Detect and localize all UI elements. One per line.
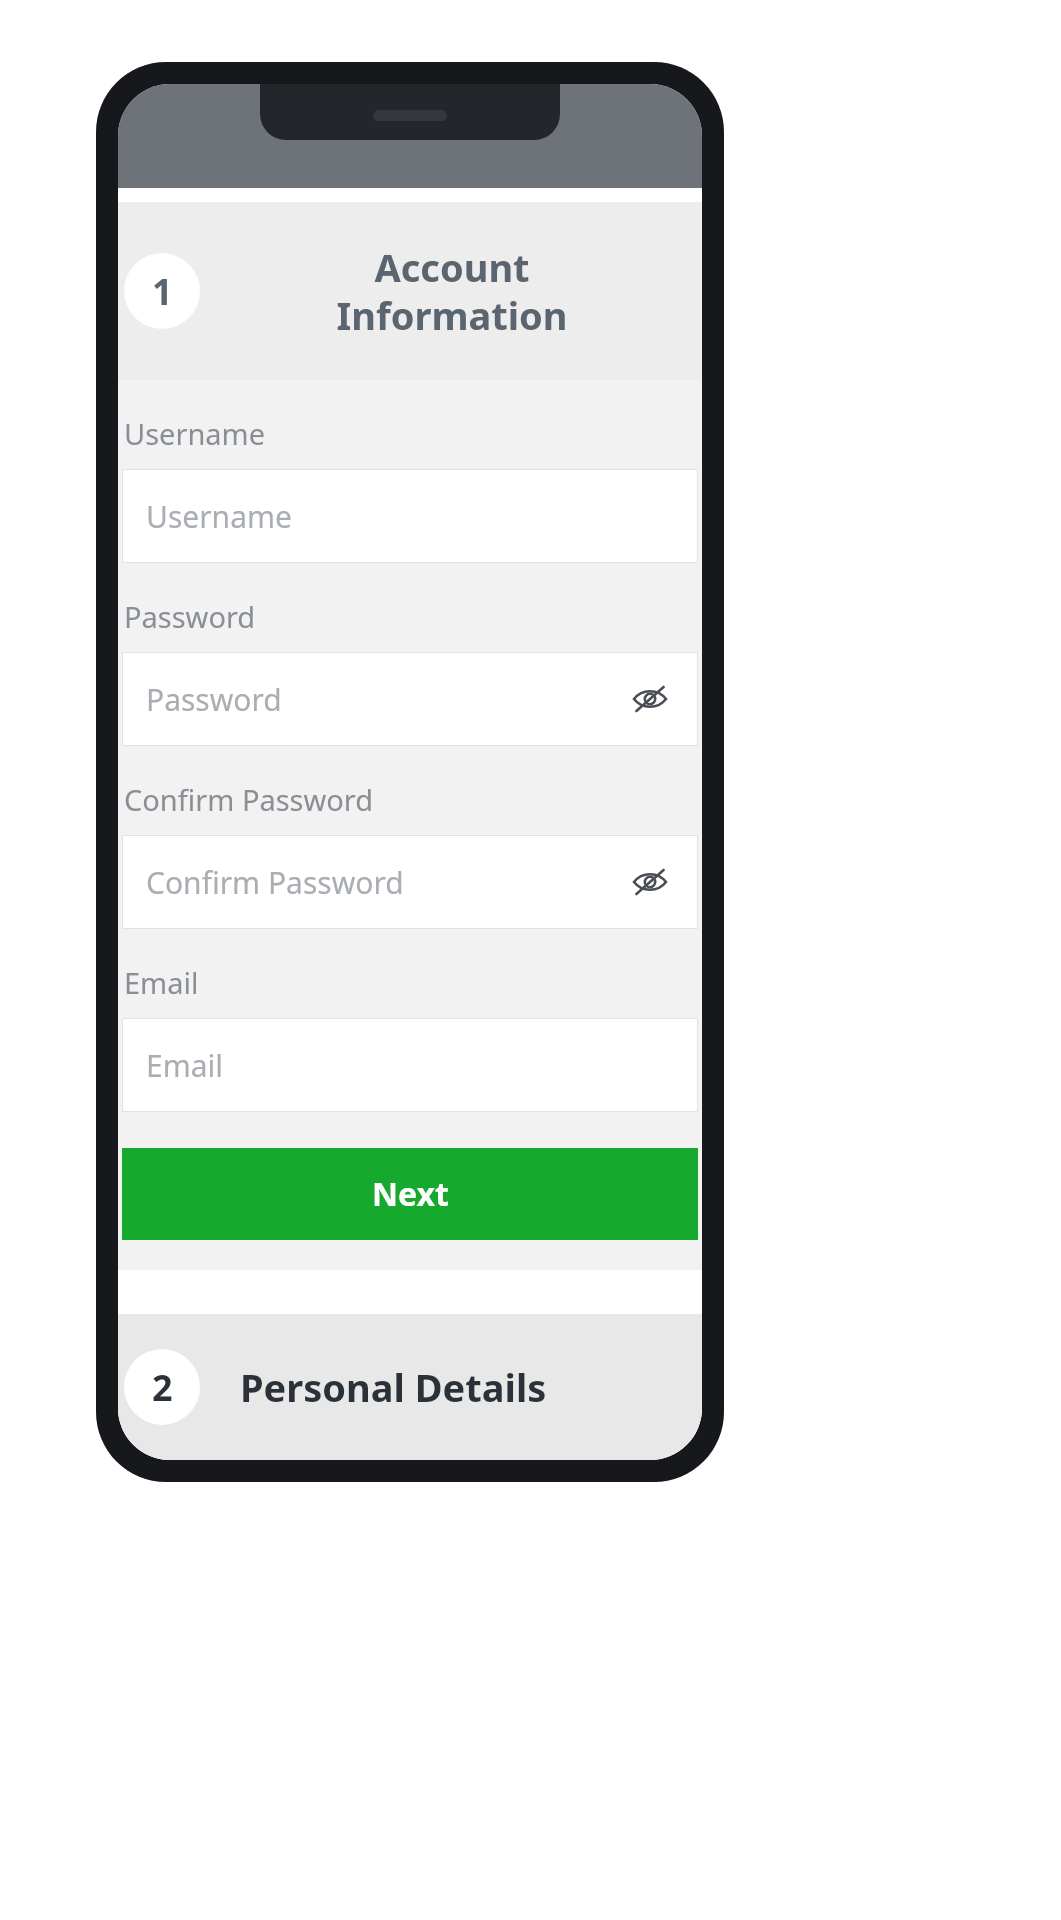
staticText: 2 xyxy=(152,1363,173,1412)
staticText: Username xyxy=(146,496,674,537)
button[interactable]: Next xyxy=(122,1148,698,1240)
button[interactable]: Email xyxy=(122,1018,698,1112)
button[interactable]: Show password xyxy=(626,858,674,906)
button[interactable]: Password xyxy=(122,652,698,746)
staticText: Password xyxy=(124,597,256,636)
button[interactable]: Username xyxy=(122,469,698,563)
button[interactable]: 1 xyxy=(118,202,702,380)
staticText: Username xyxy=(124,414,266,453)
staticText: 1 xyxy=(152,267,173,316)
staticText: Confirm Password xyxy=(124,780,374,819)
button[interactable]: 2 xyxy=(118,1314,702,1460)
staticText: Password xyxy=(146,679,626,720)
staticText: Email xyxy=(146,1045,674,1086)
staticText: Confirm Password xyxy=(146,862,626,903)
staticText: Personal Details xyxy=(240,1361,547,1413)
button[interactable]: Show password xyxy=(626,675,674,723)
button[interactable]: Confirm Password xyxy=(122,835,698,929)
staticText: Email xyxy=(124,963,199,1002)
staticText: Account Information xyxy=(336,241,568,341)
staticText: Next xyxy=(372,1172,449,1216)
